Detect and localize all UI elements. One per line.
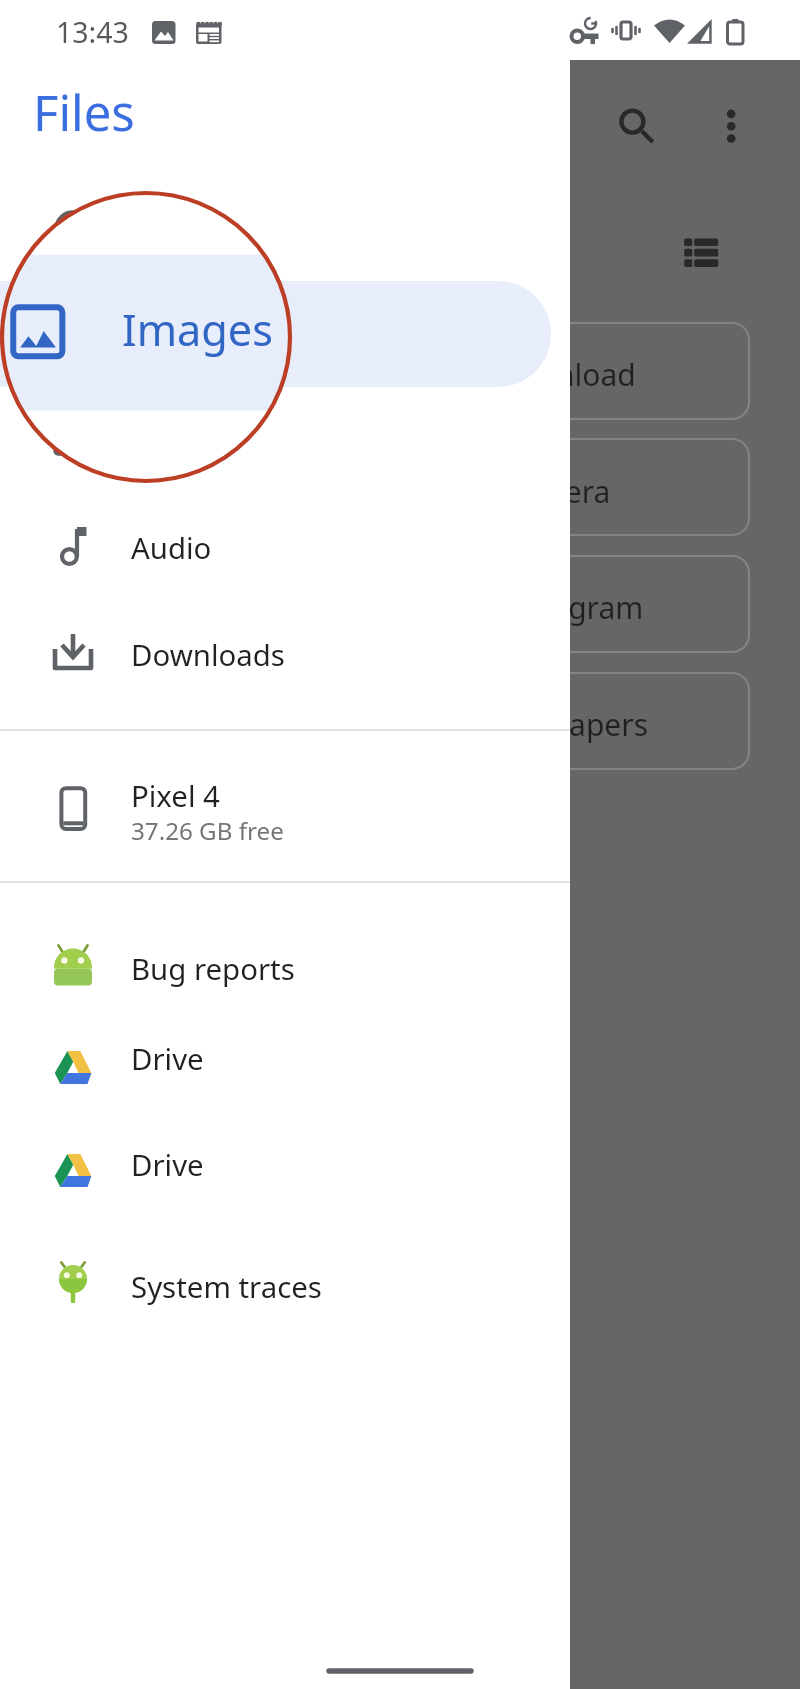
button[interactable]: Wallpapers [570,673,749,769]
staticText: Download [570,354,636,395]
button[interactable]: Videos [0,388,570,494]
button[interactable]: Bug reports [0,913,570,1003]
button[interactable]: Drive [0,1113,570,1225]
staticText: Files [33,79,135,146]
staticText: Bug reports [131,949,295,989]
button[interactable]: Download [570,323,749,419]
staticText: Camera [570,471,611,512]
staticText: 13:43 [56,13,129,52]
button[interactable]: Recent [0,176,570,282]
staticText: Pixel 4 [131,776,220,816]
button[interactable]: More options [706,96,760,150]
staticText: System traces [131,1267,322,1307]
staticText: Audio [131,528,212,568]
button[interactable]: Images [0,282,570,388]
button[interactable]: Search [610,96,664,150]
staticText: Wallpapers [570,704,649,745]
button[interactable]: Pixel 4, 37.26 GB free [0,731,570,881]
staticText: Images [122,300,273,359]
button[interactable]: Drive [0,1013,570,1113]
staticText: Telegram [570,587,644,628]
button[interactable]: Camera [570,439,749,535]
button[interactable]: Audio [0,494,570,600]
staticText: 37.26 GB free [131,814,284,847]
button[interactable]: System traces [0,1225,570,1335]
button[interactable]: Telegram [570,556,749,652]
staticText: Drive [131,1145,204,1185]
button[interactable]: Switch to list view [678,220,736,278]
button[interactable]: Downloads [0,599,570,705]
staticText: Downloads [131,635,285,675]
staticText: Drive [131,1039,204,1079]
